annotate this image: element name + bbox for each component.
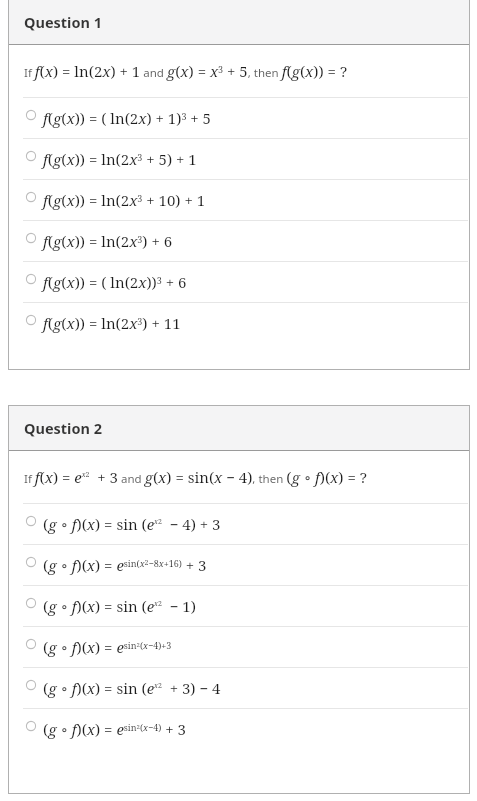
button[interactable]: (g ∘ f)(x) = esin(x2−8x+16) + 3 bbox=[9, 545, 469, 585]
staticText: Question 1 bbox=[24, 12, 103, 32]
staticText: f(g(x)) = ( ln(2x))3 + 6 bbox=[43, 272, 187, 292]
button[interactable]: f(g(x)) = ( ln(2x))3 + 6 bbox=[9, 262, 469, 302]
button[interactable]: Question 2 bbox=[9, 406, 469, 450]
staticText: (g ∘ f)(x) = esin2(x−4)+3 bbox=[43, 637, 172, 657]
staticText: f(g(x)) = ln(2x3) + 11 bbox=[43, 313, 181, 333]
staticText: f(g(x)) = ( ln(2x) + 1)3 + 5 bbox=[43, 108, 211, 128]
staticText: (g ∘ f)(x) = esin(x2−8x+16) + 3 bbox=[43, 555, 207, 575]
button[interactable]: f(g(x)) = ln(2x3 + 5) + 1 bbox=[9, 139, 469, 179]
button[interactable]: (g ∘ f)(x) = sin (ex2 − 1) bbox=[9, 586, 469, 626]
button[interactable]: f(g(x)) = ln(2x3) + 11 bbox=[9, 303, 469, 343]
staticText: (g ∘ f)(x) = sin (ex2 − 1) bbox=[43, 596, 196, 616]
button[interactable]: (g ∘ f)(x) = sin (ex2 − 4) + 3 bbox=[9, 504, 469, 544]
staticText: Question 2 bbox=[24, 418, 103, 438]
staticText: f(g(x)) = ln(2x3 + 5) + 1 bbox=[43, 149, 197, 169]
staticText: (g ∘ f)(x) = sin (ex2 − 4) + 3 bbox=[43, 514, 221, 534]
staticText: (g ∘ f)(x) = sin (ex2 + 3) − 4 bbox=[43, 678, 221, 698]
button[interactable]: Question 1 bbox=[9, 0, 469, 44]
staticText: (g ∘ f)(x) = esin2(x−4) + 3 bbox=[43, 719, 186, 739]
staticText: If f(x) = ex2 + 3 and g(x) = sin(x − 4),… bbox=[24, 467, 367, 487]
staticText: f(g(x)) = ln(2x3) + 6 bbox=[43, 231, 173, 251]
button[interactable]: f(g(x)) = ( ln(2x) + 1)3 + 5 bbox=[9, 98, 469, 138]
button[interactable]: (g ∘ f)(x) = sin (ex2 + 3) − 4 bbox=[9, 668, 469, 708]
button[interactable]: (g ∘ f)(x) = esin2(x−4) + 3 bbox=[9, 709, 469, 749]
button[interactable]: f(g(x)) = ln(2x3 + 10) + 1 bbox=[9, 180, 469, 220]
button[interactable]: f(g(x)) = ln(2x3) + 6 bbox=[9, 221, 469, 261]
staticText: f(g(x)) = ln(2x3 + 10) + 1 bbox=[43, 190, 206, 210]
staticText: If f(x) = ln(2x) + 1 and g(x) = x3 + 5, … bbox=[24, 61, 347, 81]
button[interactable]: (g ∘ f)(x) = esin2(x−4)+3 bbox=[9, 627, 469, 667]
